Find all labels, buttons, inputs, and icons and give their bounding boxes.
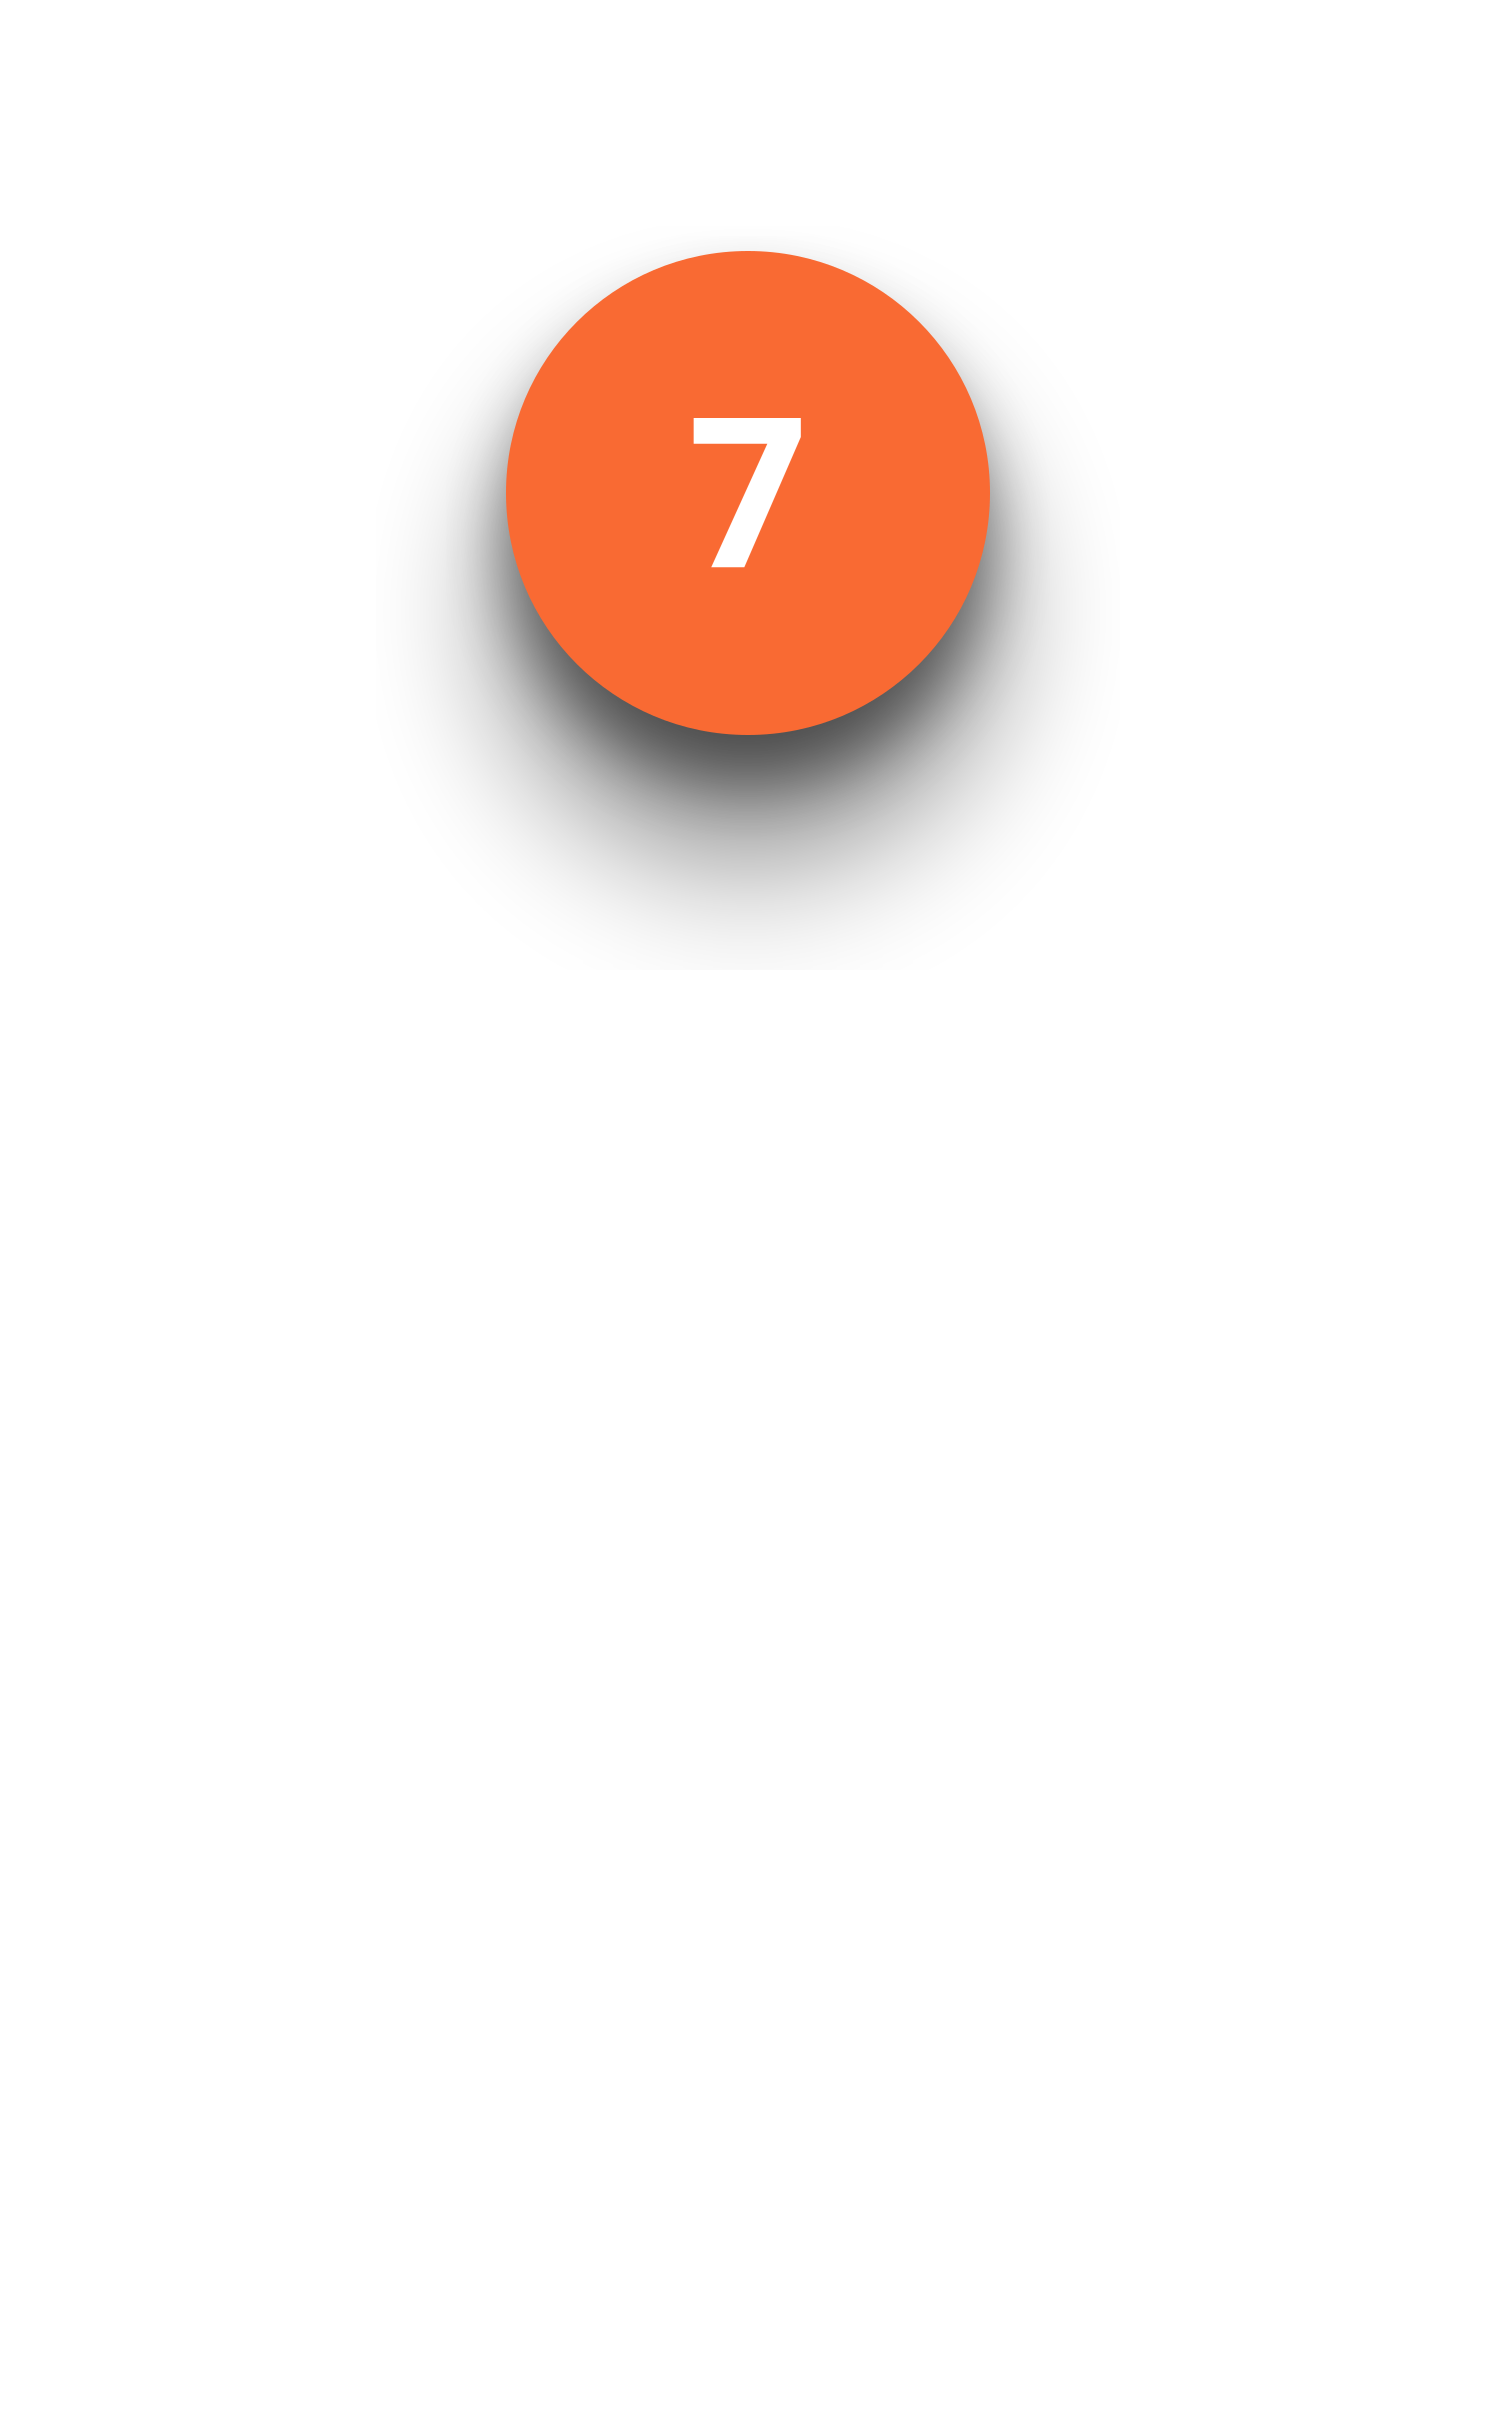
staticText: 7	[688, 347, 808, 625]
button[interactable]: 7	[506, 251, 990, 735]
